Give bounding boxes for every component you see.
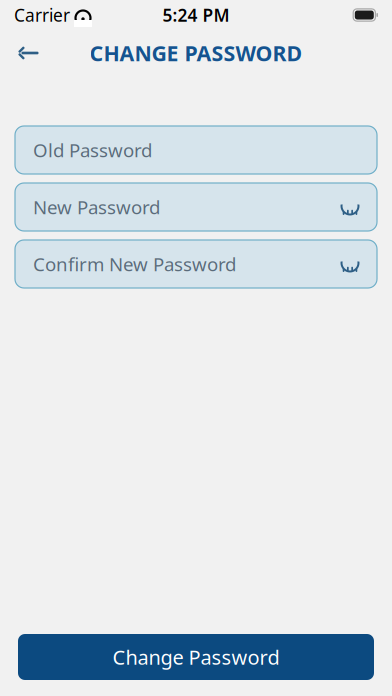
staticText: CHANGE PASSWORD [89, 39, 302, 67]
button[interactable]: Old Password [15, 126, 377, 174]
staticText: Carrier [14, 3, 70, 26]
button[interactable]: Change Password [18, 634, 374, 680]
staticText: Old Password [33, 138, 152, 162]
staticText: Change Password [112, 644, 279, 670]
staticText: 5:24 PM [162, 3, 229, 26]
staticText: New Password [33, 195, 160, 219]
staticText: Confirm New Password [33, 252, 236, 276]
button[interactable]: Show New Password [333, 187, 367, 227]
button[interactable]: Back [6, 34, 50, 72]
button[interactable]: Show Confirm New Password [333, 244, 367, 284]
button[interactable]: Confirm New Password [15, 240, 377, 288]
button[interactable]: New Password [15, 183, 377, 231]
